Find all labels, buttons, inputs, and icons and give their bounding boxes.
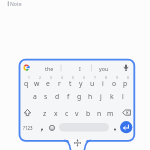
button[interactable]: e bbox=[40, 76, 56, 90]
button[interactable]: 1 bbox=[21, 70, 37, 84]
button[interactable] bbox=[20, 61, 33, 74]
button[interactable]: c bbox=[59, 106, 75, 120]
staticText: ?123 bbox=[23, 125, 33, 131]
button[interactable]: s bbox=[38, 89, 54, 103]
staticText: q bbox=[24, 79, 29, 88]
staticText: d bbox=[55, 92, 60, 101]
button[interactable]: 2 bbox=[32, 70, 48, 84]
staticText: c bbox=[65, 109, 69, 118]
button[interactable]: the bbox=[41, 61, 57, 75]
staticText: t bbox=[69, 79, 72, 88]
staticText: Note bbox=[10, 1, 22, 8]
button[interactable]: g bbox=[71, 89, 87, 103]
staticText: g bbox=[77, 92, 82, 101]
staticText: 2 bbox=[39, 75, 41, 79]
button[interactable]: n bbox=[91, 106, 107, 120]
staticText: s bbox=[44, 92, 48, 101]
button[interactable]: i bbox=[95, 76, 111, 90]
button[interactable] bbox=[59, 122, 109, 132]
staticText: j bbox=[100, 92, 102, 101]
staticText: z bbox=[43, 109, 47, 118]
button[interactable]: r bbox=[51, 76, 67, 90]
button[interactable]: a bbox=[27, 89, 43, 103]
button[interactable]: v bbox=[69, 106, 85, 120]
button[interactable]: k bbox=[104, 89, 120, 103]
button[interactable]: t bbox=[62, 76, 78, 90]
staticText: 3 bbox=[50, 75, 52, 79]
button[interactable] bbox=[21, 105, 34, 120]
button[interactable]: u bbox=[84, 76, 100, 90]
staticText: v bbox=[75, 109, 79, 118]
staticText: x bbox=[54, 109, 58, 118]
button[interactable]: l bbox=[115, 89, 131, 103]
button[interactable]: 8 bbox=[98, 70, 114, 84]
button[interactable]: z bbox=[37, 106, 53, 120]
button[interactable]: 0 bbox=[120, 70, 136, 84]
button[interactable]: ?123 bbox=[20, 121, 36, 135]
staticText: a bbox=[33, 92, 37, 101]
button[interactable]: you bbox=[96, 61, 112, 75]
staticText: 6 bbox=[83, 75, 85, 79]
button[interactable]: m bbox=[102, 106, 118, 120]
staticText: h bbox=[88, 92, 93, 101]
staticText: n bbox=[97, 109, 102, 118]
staticText: i bbox=[102, 79, 104, 88]
staticText: the bbox=[45, 65, 54, 72]
button[interactable]: f bbox=[60, 89, 76, 103]
button[interactable]: 7 bbox=[87, 70, 103, 84]
staticText: 8 bbox=[105, 75, 107, 79]
staticText: m bbox=[107, 109, 114, 118]
button[interactable] bbox=[66, 138, 89, 150]
staticText: 0 bbox=[127, 75, 129, 79]
button[interactable]: 5 bbox=[65, 70, 81, 84]
staticText: 4 bbox=[61, 75, 63, 79]
button[interactable]: b bbox=[80, 106, 96, 120]
staticText: 7 bbox=[94, 75, 96, 79]
staticText: 9 bbox=[116, 75, 118, 79]
button[interactable]: 4 bbox=[54, 70, 70, 84]
button[interactable] bbox=[119, 61, 133, 75]
staticText: b bbox=[86, 109, 91, 118]
button[interactable] bbox=[47, 121, 58, 135]
button[interactable]: I bbox=[72, 61, 88, 75]
button[interactable]: j bbox=[93, 89, 109, 103]
staticText: e bbox=[46, 79, 50, 88]
staticText: u bbox=[90, 79, 95, 88]
staticText: o bbox=[112, 79, 117, 88]
button[interactable]: x bbox=[48, 106, 64, 120]
staticText: f bbox=[67, 92, 70, 101]
staticText: r bbox=[58, 79, 61, 88]
staticText: 5 bbox=[72, 75, 74, 79]
staticText: you bbox=[99, 65, 109, 72]
staticText: p bbox=[123, 79, 128, 88]
button[interactable]: 9 bbox=[109, 70, 125, 84]
staticText: w bbox=[34, 79, 40, 88]
button[interactable] bbox=[120, 121, 133, 134]
button[interactable] bbox=[36, 121, 47, 135]
button[interactable]: 6 bbox=[76, 70, 92, 84]
button[interactable] bbox=[110, 121, 120, 135]
button[interactable]: w bbox=[29, 76, 45, 90]
staticText: I bbox=[79, 65, 81, 72]
staticText: 1 bbox=[28, 75, 30, 79]
staticText: y bbox=[79, 79, 83, 88]
button[interactable]: 3 bbox=[43, 70, 59, 84]
button[interactable]: d bbox=[49, 89, 65, 103]
button[interactable]: y bbox=[73, 76, 89, 90]
button[interactable]: Note bbox=[10, 0, 30, 8]
button[interactable]: h bbox=[82, 89, 98, 103]
button[interactable]: q bbox=[18, 76, 34, 90]
staticText: k bbox=[110, 92, 114, 101]
button[interactable]: p bbox=[117, 76, 133, 90]
staticText: l bbox=[122, 92, 124, 101]
button[interactable] bbox=[120, 105, 133, 120]
button[interactable]: o bbox=[106, 76, 122, 90]
